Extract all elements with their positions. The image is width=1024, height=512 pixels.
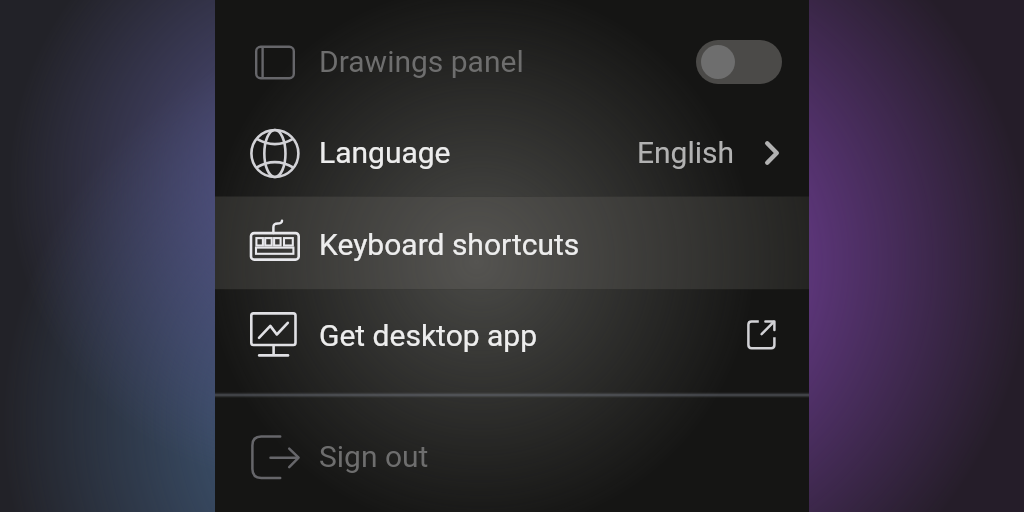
staticText: Language [319, 135, 451, 170]
staticText: English [637, 135, 735, 170]
staticText: Drawings panel [319, 44, 524, 79]
button[interactable]: Get desktop app [215, 290, 809, 381]
button[interactable]: Drawings panel toggle, off [696, 40, 782, 84]
button[interactable]: Drawings panel [215, 16, 809, 107]
staticText: Get desktop app [319, 318, 538, 353]
button[interactable]: Keyboard shortcuts [215, 199, 809, 290]
button[interactable]: Sign out [215, 411, 809, 502]
staticText: Sign out [319, 439, 429, 474]
button[interactable]: Language [215, 107, 809, 198]
staticText: Keyboard shortcuts [319, 227, 580, 262]
button[interactable]: Open desktop app page [733, 290, 790, 381]
button[interactable]: English [637, 107, 779, 198]
